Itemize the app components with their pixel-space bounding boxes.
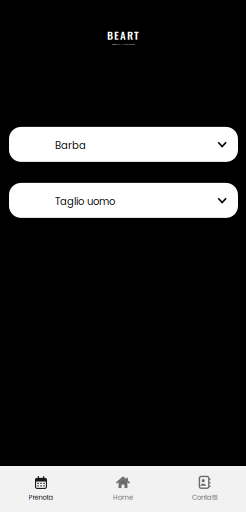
staticText: BEART bbox=[107, 27, 139, 43]
staticText: BARBER & HAIRDRESSER bbox=[111, 43, 134, 46]
button[interactable]: Home bbox=[82, 466, 164, 512]
button[interactable]: Contatti bbox=[164, 466, 246, 512]
button[interactable]: Barba bbox=[9, 127, 238, 162]
staticText: Taglio uomo bbox=[55, 194, 115, 208]
staticText: Home bbox=[113, 493, 133, 502]
staticText: Prenota bbox=[28, 493, 53, 502]
button[interactable]: Taglio uomo bbox=[9, 183, 238, 218]
button[interactable]: Prenota bbox=[0, 466, 82, 512]
staticText: Barba bbox=[55, 138, 86, 152]
staticText: Contatti bbox=[192, 493, 218, 502]
